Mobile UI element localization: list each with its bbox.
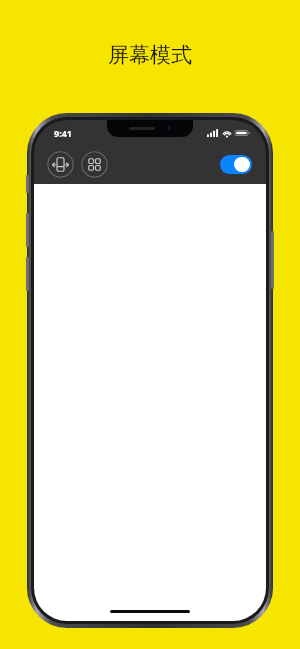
button[interactable]: Toggle screen mode	[220, 155, 252, 174]
staticText: 屏幕模式	[108, 42, 192, 68]
staticText: 9:41	[54, 127, 72, 139]
button[interactable]: Grid layout	[81, 151, 108, 178]
button[interactable]: Rotate screen	[47, 151, 74, 178]
